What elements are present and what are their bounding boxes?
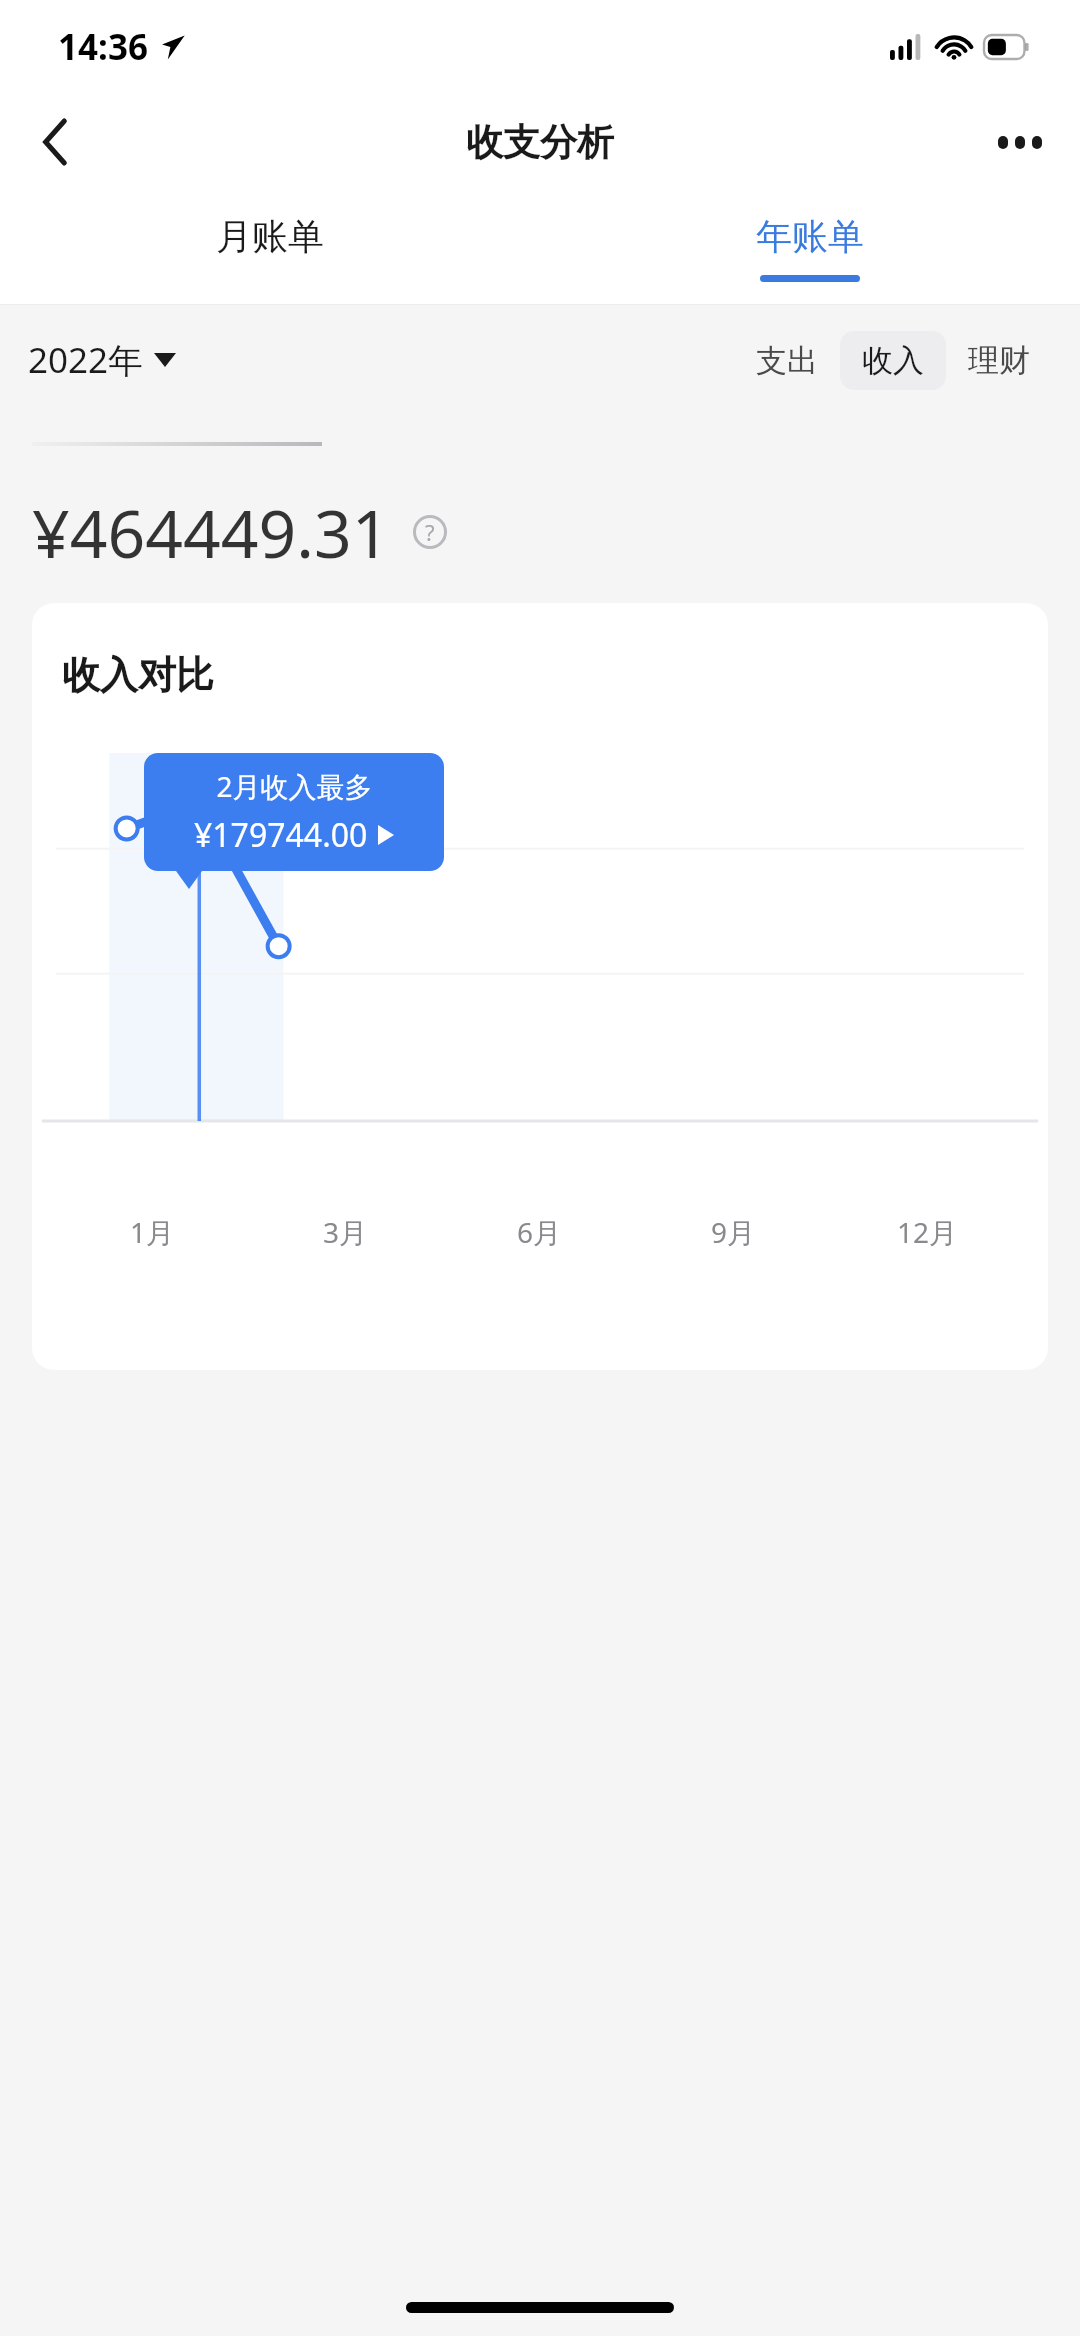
- staticText: 年账单: [756, 214, 864, 259]
- staticText: 收支分析: [466, 119, 614, 166]
- button[interactable]: Help: [408, 510, 452, 554]
- staticText: 收入对比: [62, 651, 214, 699]
- button[interactable]: 收入: [840, 331, 946, 390]
- staticText: 2022年: [28, 336, 144, 384]
- staticText: 1月: [130, 1213, 175, 1251]
- staticText: ¥179744.00: [194, 813, 368, 857]
- staticText: 14:36: [58, 23, 148, 71]
- button[interactable]: 支出: [734, 331, 840, 390]
- button[interactable]: 2月收入最多: [144, 753, 444, 871]
- button[interactable]: 月账单: [0, 190, 540, 305]
- button[interactable]: 2022年: [28, 336, 176, 384]
- staticText: 2月收入最多: [216, 767, 373, 805]
- staticText: ?: [425, 517, 435, 547]
- button[interactable]: 理财: [946, 331, 1052, 390]
- staticText: 月账单: [216, 214, 324, 259]
- staticText: 支出: [756, 341, 818, 380]
- staticText: 3月: [323, 1213, 368, 1251]
- staticText: ¥464449.31: [32, 487, 390, 577]
- staticText: 6月: [517, 1213, 562, 1251]
- staticText: 9月: [711, 1213, 756, 1251]
- button[interactable]: More options: [984, 106, 1056, 178]
- staticText: 收入: [862, 341, 924, 380]
- staticText: 12月: [897, 1213, 958, 1251]
- button[interactable]: Back: [20, 106, 92, 178]
- staticText: 理财: [968, 341, 1030, 380]
- button[interactable]: 年账单: [540, 190, 1080, 305]
